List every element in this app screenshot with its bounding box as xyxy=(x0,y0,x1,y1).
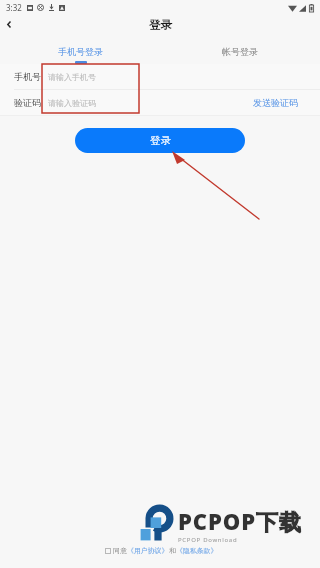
button[interactable]: 同意 xyxy=(105,546,218,555)
staticText: PCPOP下载 xyxy=(178,506,302,536)
button[interactable]: Back xyxy=(0,15,18,34)
button[interactable]: 发送验证码 xyxy=(251,95,300,110)
staticText: 帐号登录 xyxy=(222,46,258,57)
staticText: 3:32 xyxy=(6,2,22,13)
staticText: 验证码 xyxy=(14,97,41,108)
staticText: 登录 xyxy=(149,18,172,32)
staticText: 请输入验证码 xyxy=(48,98,96,108)
staticText: 发送验证码 xyxy=(253,97,298,108)
staticText: 手机号登录 xyxy=(58,46,103,57)
staticText: 手机号 xyxy=(14,71,41,82)
button[interactable]: 登录 xyxy=(75,128,245,153)
button[interactable]: 手机号登录 xyxy=(0,34,160,64)
staticText: 同意 xyxy=(113,546,127,555)
staticText: 《用户协议》 xyxy=(127,546,169,555)
button[interactable]: 帐号登录 xyxy=(160,34,320,64)
staticText: 登录 xyxy=(150,134,171,147)
staticText: PCPOP Download xyxy=(178,536,238,544)
staticText: 请输入手机号 xyxy=(48,72,96,82)
staticText: 和 xyxy=(169,546,176,555)
staticText: 《隐私条款》 xyxy=(176,546,218,555)
